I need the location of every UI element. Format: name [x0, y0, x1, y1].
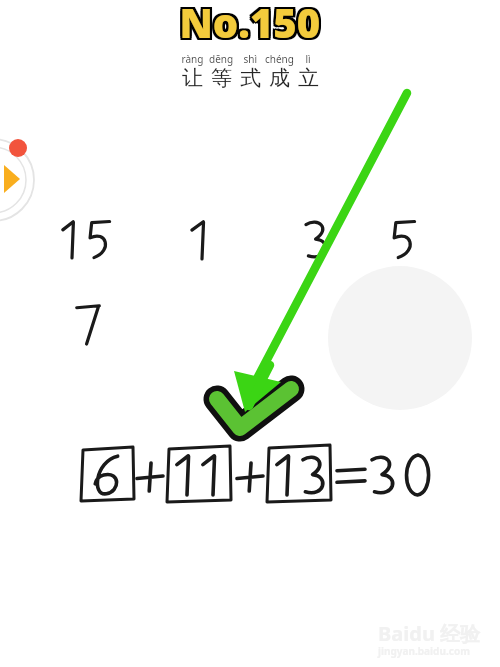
- button[interactable]: [81, 447, 134, 501]
- button[interactable]: [267, 445, 331, 502]
- button[interactable]: Hint: [0, 140, 52, 222]
- button[interactable]: [167, 446, 231, 502]
